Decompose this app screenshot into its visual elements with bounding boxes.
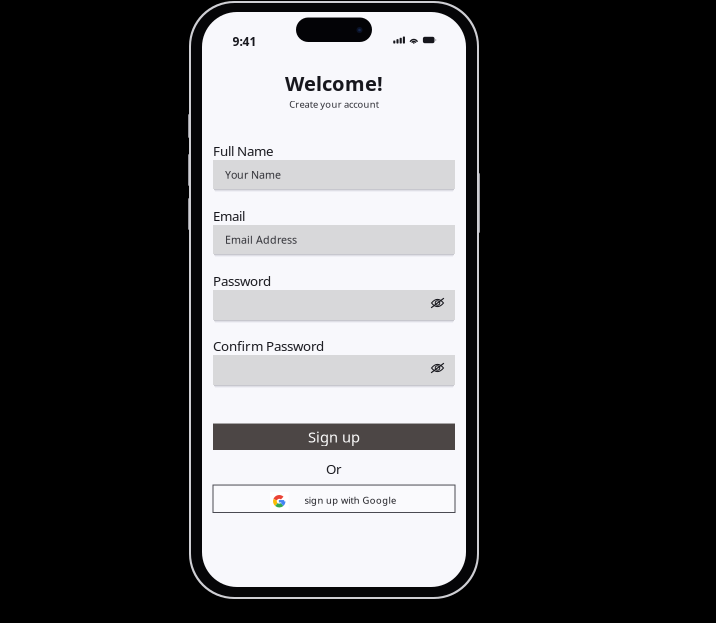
button[interactable]: Show password [425,353,449,383]
staticText: Create your account [289,98,379,110]
button[interactable] [213,290,455,320]
staticText: Welcome! [285,70,383,97]
button[interactable]: Your Name [213,160,455,189]
staticText: Email Address [225,232,297,247]
button[interactable]: Email Address [213,225,455,254]
button[interactable]: Sign up [213,423,455,450]
staticText: 9:41 [232,33,256,49]
button[interactable] [213,355,455,385]
staticText: sign up with Google [304,494,396,506]
staticText: Your Name [225,167,281,182]
button[interactable]: Show password [425,288,449,318]
staticText: Email [213,207,245,225]
staticText: Sign up [308,427,360,446]
staticText: Full Name [213,142,274,160]
button[interactable]: sign up with Google [213,485,455,512]
staticText: Confirm Password [213,337,324,355]
staticText: Or [326,460,342,478]
staticText: Password [213,272,271,290]
